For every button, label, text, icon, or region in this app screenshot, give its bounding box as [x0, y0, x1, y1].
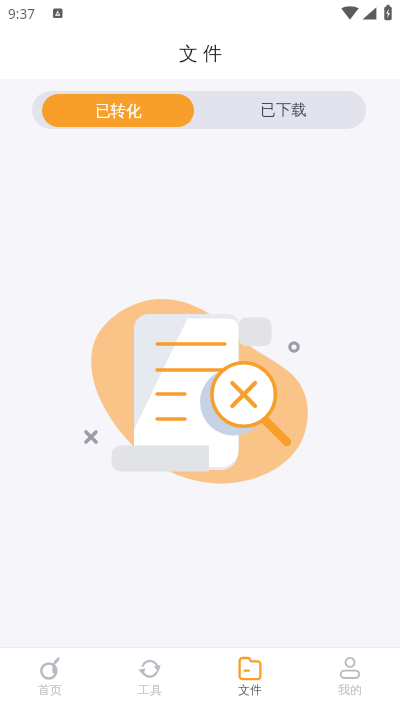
button[interactable]: 已下载 — [200, 91, 366, 129]
staticText: 文件 — [238, 682, 262, 697]
staticText: 首页 — [38, 682, 62, 697]
staticText: 9:37 — [8, 5, 35, 23]
staticText: 已转化 — [95, 101, 142, 121]
button[interactable]: Files — [200, 648, 300, 711]
button[interactable]: 已转化 — [42, 94, 194, 127]
staticText: 文 件 — [179, 40, 222, 66]
button[interactable]: Profile — [300, 648, 400, 711]
staticText: 工具 — [138, 682, 162, 697]
button[interactable]: Home — [0, 648, 100, 711]
button[interactable]: Tools — [100, 648, 200, 711]
staticText: 我的 — [338, 682, 362, 697]
staticText: 已下载 — [260, 100, 307, 120]
